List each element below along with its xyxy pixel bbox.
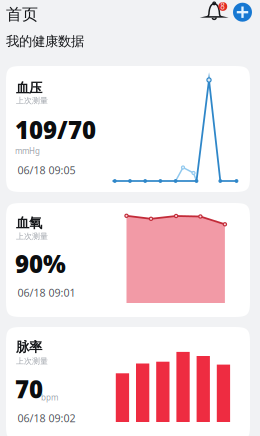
staticText: 首页 [6, 4, 38, 24]
button[interactable]: 血氧 [6, 203, 250, 317]
staticText: 90% [15, 248, 66, 280]
staticText: mmHg [15, 146, 40, 156]
button[interactable]: 血压 [6, 66, 250, 192]
staticText: 8 [220, 1, 225, 12]
staticText: 我的健康数据 [6, 33, 84, 49]
button[interactable]: 脉率 [6, 327, 250, 436]
staticText: 06/18 09:02 [17, 411, 75, 425]
staticText: bpm [41, 392, 58, 403]
button[interactable]: 通知 [203, 1, 227, 23]
staticText: 上次测量 [16, 356, 48, 366]
staticText: 脉率 [16, 339, 42, 355]
staticText: 上次测量 [16, 96, 48, 105]
staticText: 109/70 [15, 114, 96, 146]
button[interactable]: 添加 [232, 2, 252, 22]
staticText: 70 [15, 373, 43, 405]
staticText: 上次测量 [16, 231, 48, 241]
staticText: 06/18 09:01 [17, 286, 75, 300]
staticText: 血压 [16, 80, 42, 96]
staticText: 血氧 [16, 215, 42, 231]
staticText: 06/18 09:05 [17, 163, 75, 177]
